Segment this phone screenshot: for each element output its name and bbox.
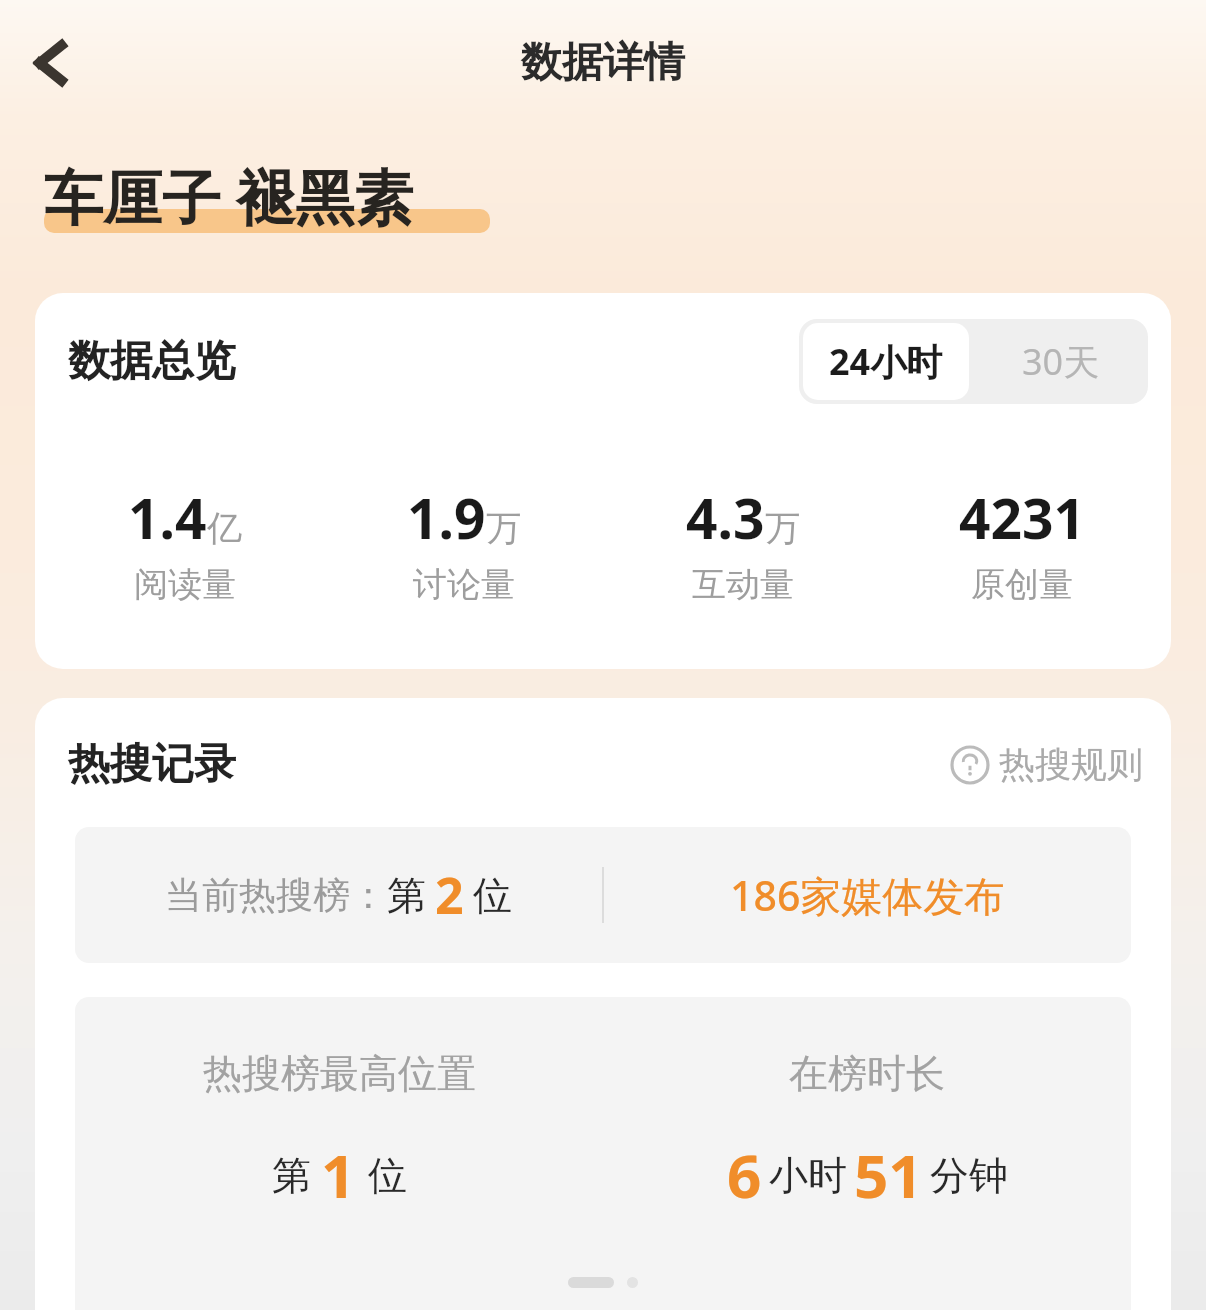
staticText: 4.3: [686, 480, 765, 555]
staticText: 第: [272, 1151, 311, 1200]
staticText: 位: [368, 1151, 407, 1200]
staticText: 万: [486, 506, 521, 550]
staticText: 万: [765, 506, 800, 550]
staticText: 51: [854, 1134, 923, 1216]
button[interactable]: 24小时: [803, 323, 969, 400]
button[interactable]: 当前热搜榜：: [75, 827, 1131, 963]
staticText: 互动量: [692, 563, 794, 606]
staticText: 亿: [207, 506, 242, 550]
staticText: 30天: [1022, 337, 1100, 386]
staticText: 第: [387, 871, 426, 920]
staticText: 6: [727, 1134, 762, 1216]
staticText: 原创量: [971, 563, 1073, 606]
staticText: 2: [435, 861, 464, 929]
staticText: 阅读量: [134, 563, 236, 606]
staticText: 热搜记录: [68, 738, 236, 791]
staticText: 1.4: [128, 480, 207, 555]
staticText: 24小时: [829, 337, 943, 386]
staticText: 车厘子 褪黑素: [44, 156, 414, 237]
staticText: 小时: [769, 1151, 847, 1200]
staticText: 186家媒体发布: [730, 867, 1006, 923]
staticText: 在榜时长: [789, 1049, 945, 1098]
staticText: 当前热搜榜：: [165, 872, 387, 919]
button[interactable]: 热搜规则: [950, 742, 1143, 787]
staticText: 讨论量: [413, 563, 515, 606]
staticText: 位: [473, 871, 512, 920]
staticText: 热搜榜最高位置: [203, 1049, 476, 1098]
button[interactable]: Back: [12, 24, 90, 102]
staticText: 数据详情: [521, 37, 685, 89]
staticText: 1.9: [407, 480, 486, 555]
staticText: 1: [321, 1134, 356, 1216]
staticText: 4231: [959, 480, 1085, 555]
staticText: 分钟: [930, 1151, 1008, 1200]
button[interactable]: 30天: [973, 319, 1148, 404]
staticText: 数据总览: [68, 335, 236, 388]
staticText: 热搜规则: [999, 742, 1143, 787]
